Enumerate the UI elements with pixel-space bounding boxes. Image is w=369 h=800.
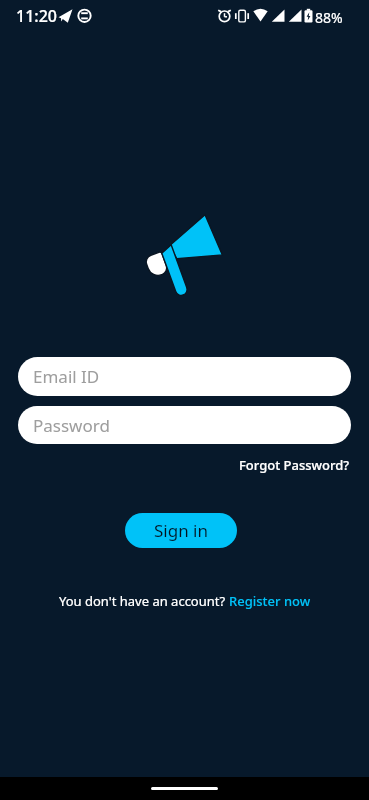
staticText: 11:20	[16, 5, 57, 27]
button[interactable]: Sign in	[125, 513, 237, 548]
button[interactable]: Password	[18, 406, 351, 444]
button[interactable]: Forgot Password?	[239, 456, 350, 474]
button[interactable]: Register now	[229, 592, 311, 610]
staticText: You don't have an account?	[59, 592, 229, 610]
staticText: 88%	[315, 8, 343, 27]
button[interactable]: Email ID	[18, 357, 351, 396]
staticText: Email ID	[33, 365, 100, 388]
staticText: Sign in	[154, 519, 208, 542]
staticText: Password	[33, 414, 110, 437]
